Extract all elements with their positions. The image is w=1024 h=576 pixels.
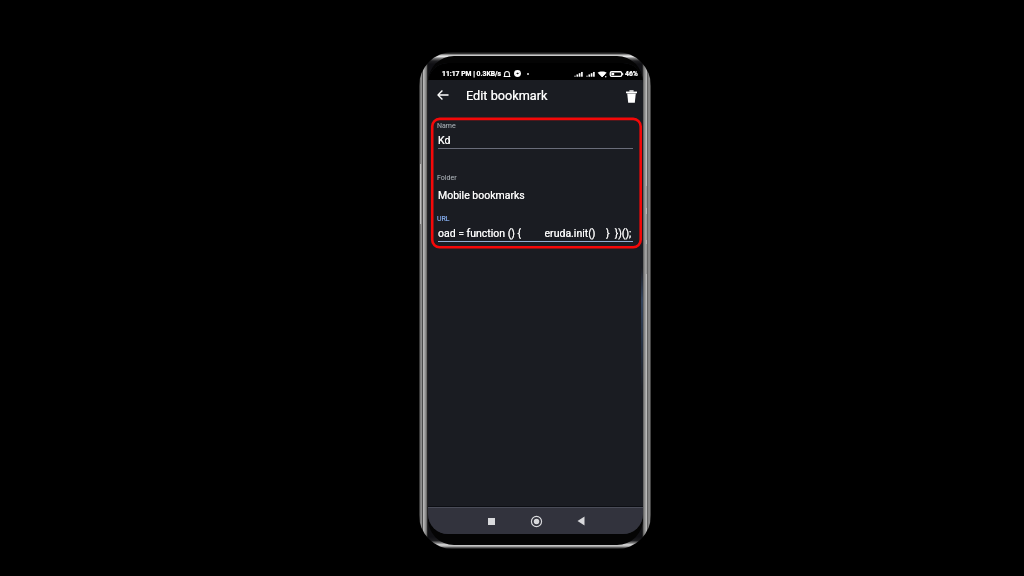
button[interactable]: Delete bookmark [618, 79, 643, 113]
staticText: 11:17 PM | 0.3KB/s [442, 70, 502, 78]
button[interactable]: Navigate up [429, 78, 456, 112]
button[interactable]: URL [434, 211, 636, 243]
staticText: 46% [625, 70, 638, 78]
button[interactable]: Recent apps [474, 508, 508, 534]
staticText: oad = function () { eruda.init() } })(); [438, 227, 640, 239]
button[interactable]: Name [434, 118, 636, 149]
staticText: Edit bookmark [466, 88, 548, 103]
staticText: Folder [437, 174, 457, 182]
staticText: URL [437, 215, 450, 223]
button[interactable]: Back [564, 508, 598, 534]
staticText: Kd [438, 134, 451, 146]
staticText: Name [437, 122, 456, 130]
button[interactable]: Folder [434, 170, 636, 206]
button[interactable]: Home [519, 508, 553, 534]
staticText: Mobile bookmarks [438, 189, 525, 201]
